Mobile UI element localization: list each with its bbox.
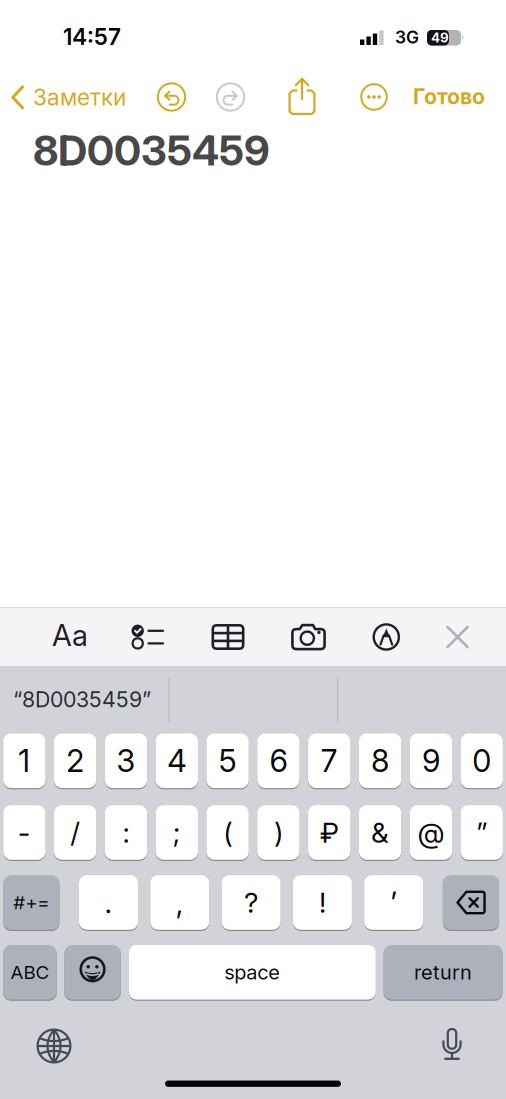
staticText: , bbox=[176, 885, 184, 920]
staticText: space bbox=[224, 960, 280, 984]
staticText: 2 bbox=[66, 743, 84, 779]
button[interactable]: ; bbox=[156, 805, 198, 860]
staticText: ” bbox=[476, 816, 487, 849]
staticText: 14:57 bbox=[63, 23, 121, 50]
staticText: return bbox=[414, 960, 472, 984]
staticText: “8D0035459” bbox=[13, 687, 151, 712]
button[interactable]: ! bbox=[293, 875, 352, 930]
staticText: @ bbox=[417, 816, 444, 849]
staticText: 5 bbox=[219, 743, 237, 779]
staticText: / bbox=[70, 816, 80, 849]
button[interactable]: 4 bbox=[156, 733, 198, 788]
staticText: 1 bbox=[18, 743, 30, 779]
button[interactable]: Table bbox=[211, 624, 244, 650]
button[interactable]: : bbox=[105, 805, 147, 860]
button[interactable]: 9 bbox=[410, 733, 452, 788]
button[interactable]: 3 bbox=[105, 733, 147, 788]
button[interactable]: return bbox=[384, 945, 503, 1000]
button[interactable]: ’ bbox=[364, 875, 423, 930]
staticText: 0 bbox=[472, 743, 491, 779]
staticText: ! bbox=[319, 886, 326, 919]
button[interactable]: 8 bbox=[359, 733, 401, 788]
button[interactable]: Delete bbox=[443, 875, 499, 930]
button[interactable]: Format bbox=[52, 618, 88, 653]
button[interactable]: 1 bbox=[3, 733, 45, 788]
button[interactable]: 5 bbox=[206, 733, 249, 788]
staticText: Заметки bbox=[33, 84, 126, 111]
staticText: - bbox=[18, 816, 31, 849]
button[interactable]: Camera bbox=[291, 623, 326, 650]
button[interactable]: Готово bbox=[413, 84, 485, 109]
button[interactable]: Close bbox=[446, 625, 469, 648]
button[interactable]: “8D0035459” bbox=[13, 687, 151, 712]
button[interactable]: 2 bbox=[54, 733, 96, 788]
staticText: ? bbox=[244, 886, 258, 919]
button[interactable]: , bbox=[150, 875, 209, 930]
button[interactable]: & bbox=[359, 805, 401, 860]
button[interactable]: #+= bbox=[3, 875, 59, 930]
button[interactable]: @ bbox=[410, 805, 452, 860]
button[interactable]: ? bbox=[222, 875, 281, 930]
button[interactable]: Dictate bbox=[439, 1026, 465, 1064]
staticText: ₽ bbox=[320, 816, 339, 849]
staticText: Готово bbox=[413, 84, 485, 109]
button[interactable]: / bbox=[54, 805, 96, 860]
staticText: ) bbox=[274, 816, 283, 849]
button[interactable]: Emoji bbox=[64, 945, 121, 1000]
staticText: 3 bbox=[116, 743, 135, 779]
staticText: ’ bbox=[390, 885, 397, 920]
staticText: #+= bbox=[13, 891, 49, 913]
button[interactable]: 7 bbox=[308, 733, 350, 788]
staticText: Aa bbox=[52, 618, 88, 653]
staticText: 6 bbox=[269, 743, 287, 779]
button[interactable]: space bbox=[129, 945, 376, 1000]
button[interactable]: ” bbox=[461, 805, 503, 860]
staticText: 3G bbox=[395, 27, 419, 47]
button[interactable]: ) bbox=[257, 805, 300, 860]
staticText: 8 bbox=[371, 743, 389, 779]
button[interactable]: Markup bbox=[372, 623, 400, 651]
button[interactable]: 6 bbox=[257, 733, 300, 788]
staticText: ABC bbox=[10, 961, 49, 983]
button[interactable]: 0 bbox=[461, 733, 503, 788]
button[interactable]: Redo bbox=[215, 82, 245, 112]
button[interactable]: Заметки bbox=[11, 84, 126, 111]
button[interactable]: Next keyboard bbox=[36, 1028, 72, 1064]
button[interactable]: Checklist bbox=[130, 624, 164, 650]
button[interactable]: Share bbox=[288, 77, 316, 115]
staticText: 4 bbox=[167, 743, 186, 779]
staticText: 8D0035459 bbox=[33, 126, 270, 175]
button[interactable]: Undo bbox=[156, 82, 186, 112]
staticText: ; bbox=[173, 816, 181, 849]
staticText: : bbox=[122, 816, 129, 849]
staticText: 7 bbox=[321, 743, 338, 779]
button[interactable]: . bbox=[79, 875, 138, 930]
button[interactable]: ₽ bbox=[308, 805, 350, 860]
button[interactable]: ABC bbox=[3, 945, 57, 1000]
button[interactable]: ( bbox=[206, 805, 249, 860]
staticText: & bbox=[371, 816, 389, 849]
staticText: . bbox=[104, 885, 112, 920]
staticText: 9 bbox=[422, 743, 440, 779]
button[interactable]: More bbox=[360, 83, 388, 111]
button[interactable]: - bbox=[3, 805, 45, 860]
staticText: 49 bbox=[431, 30, 449, 46]
staticText: ( bbox=[223, 816, 232, 849]
